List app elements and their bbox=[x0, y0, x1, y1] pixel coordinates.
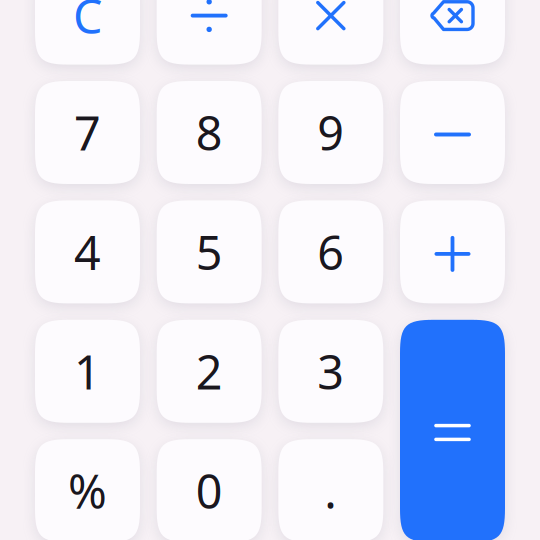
staticText: 9 bbox=[317, 101, 344, 163]
staticText: % bbox=[68, 460, 107, 522]
staticText: 3 bbox=[317, 340, 344, 402]
button[interactable]: 7 bbox=[35, 81, 140, 184]
button[interactable]: 9 bbox=[278, 81, 383, 184]
button[interactable]: Multiply bbox=[278, 0, 383, 65]
staticText: 5 bbox=[196, 221, 223, 283]
staticText: 4 bbox=[74, 221, 101, 283]
button[interactable]: % bbox=[35, 439, 140, 540]
button[interactable]: 8 bbox=[157, 81, 262, 184]
button[interactable]: 1 bbox=[35, 320, 140, 423]
button[interactable]: 3 bbox=[278, 320, 383, 423]
staticText: 1 bbox=[74, 340, 101, 402]
button[interactable]: 4 bbox=[35, 200, 140, 303]
button[interactable]: Equals bbox=[400, 320, 505, 540]
staticText: 2 bbox=[196, 340, 223, 402]
staticText: C bbox=[73, 0, 102, 47]
button[interactable]: Minus bbox=[400, 81, 505, 184]
button[interactable]: . bbox=[278, 439, 383, 540]
button[interactable]: 6 bbox=[278, 200, 383, 303]
button[interactable]: 2 bbox=[157, 320, 262, 423]
staticText: 6 bbox=[317, 221, 344, 283]
button[interactable]: Plus bbox=[400, 200, 505, 303]
staticText: 7 bbox=[74, 101, 101, 163]
button[interactable]: 5 bbox=[157, 200, 262, 303]
button[interactable]: Clear bbox=[35, 0, 140, 65]
staticText: 0 bbox=[196, 460, 223, 522]
button[interactable]: 0 bbox=[157, 439, 262, 540]
staticText: . bbox=[324, 460, 337, 522]
button[interactable]: Delete bbox=[400, 0, 505, 65]
button[interactable]: Divide bbox=[157, 0, 262, 65]
staticText: 8 bbox=[196, 101, 223, 163]
